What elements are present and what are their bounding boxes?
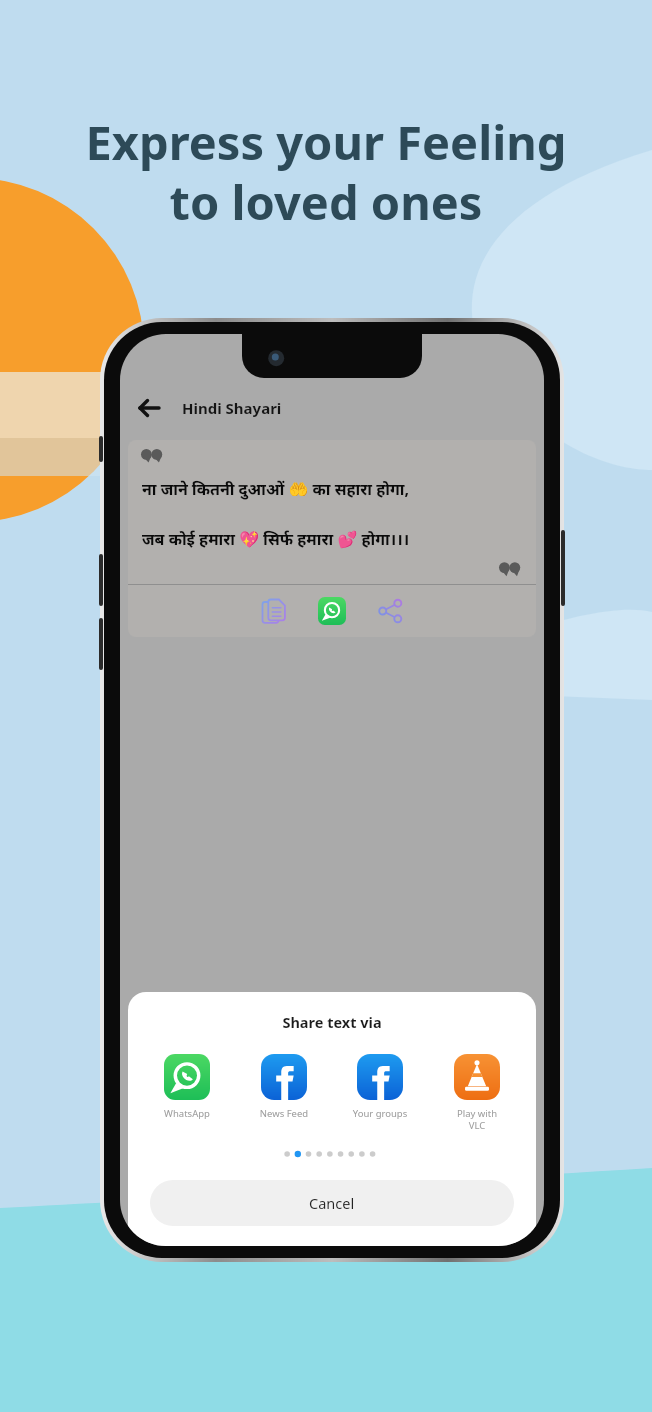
staticText: ना जाने कितनी दुआओं 🤲 का सहारा होगा, <box>142 478 522 500</box>
button[interactable]: Your groups <box>343 1054 417 1120</box>
staticText: News Feed <box>247 1107 321 1120</box>
button[interactable]: Share <box>368 589 412 633</box>
button[interactable]: Play with VLC <box>440 1054 514 1132</box>
staticText: Your groups <box>343 1107 417 1120</box>
button[interactable]: News Feed <box>247 1054 321 1120</box>
button[interactable]: WhatsApp <box>150 1054 224 1120</box>
button[interactable]: Cancel <box>150 1180 514 1226</box>
staticText: Play with VLC <box>440 1107 514 1132</box>
staticText: Share text via <box>128 1012 536 1032</box>
staticText: Hindi Shayari <box>182 398 282 418</box>
button[interactable]: Back <box>130 389 168 427</box>
button[interactable]: Copy <box>252 589 296 633</box>
staticText: Express your Feeling to loved ones <box>0 110 652 234</box>
button[interactable]: ना जाने कितनी दुआओं 🤲 का सहारा होगा, <box>128 440 536 637</box>
button[interactable]: Share on WhatsApp <box>310 589 354 633</box>
staticText: Cancel <box>309 1193 355 1213</box>
staticText: WhatsApp <box>150 1107 224 1120</box>
staticText: जब कोई हमारा 💖 सिर्फ हमारा 💕 होगा।।। <box>142 528 522 550</box>
